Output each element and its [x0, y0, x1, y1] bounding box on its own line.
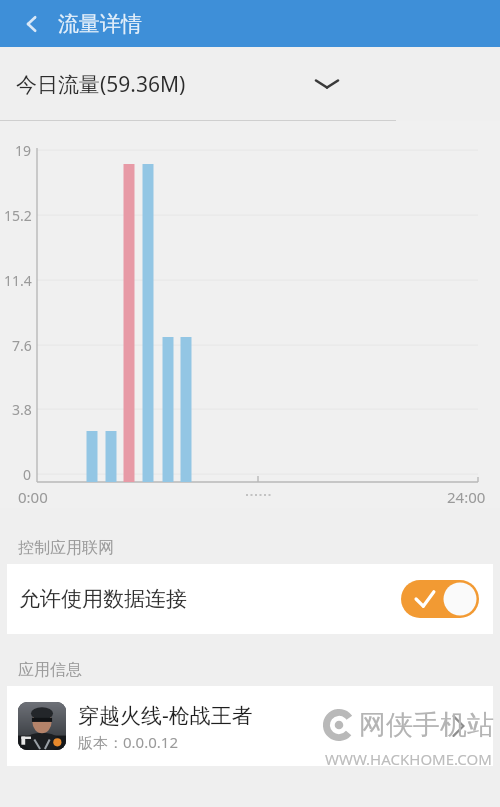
staticText: 19 [15, 141, 32, 160]
staticText: 应用信息 [18, 660, 82, 680]
staticText: 7.6 [12, 336, 32, 355]
staticText: 0:00 [18, 487, 48, 507]
button[interactable]: 今日流量(59.36M) [0, 47, 500, 121]
staticText: 15.2 [4, 206, 32, 225]
staticText: WWW.HACKHOME.COM [325, 749, 492, 769]
button[interactable]: Back [12, 4, 52, 44]
button[interactable]: Allow mobile data toggle [401, 580, 479, 618]
other: Expand [312, 74, 342, 94]
staticText: 3.8 [12, 400, 32, 419]
staticText: 0 [23, 465, 32, 484]
staticText: 网侠手机站 [359, 708, 494, 742]
staticText: 允许使用数据连接 [19, 586, 187, 612]
staticText: 流量详情 [58, 11, 142, 37]
staticText: 穿越火线-枪战王者 [78, 701, 253, 730]
staticText: 24:00 [447, 487, 486, 507]
other: Open app details [449, 713, 467, 739]
staticText: 控制应用联网 [18, 538, 114, 558]
staticText: 今日流量(59.36M) [16, 70, 186, 99]
staticText: 版本：0.0.0.12 [78, 732, 178, 752]
button[interactable]: 穿越火线-枪战王者 [7, 686, 493, 766]
button[interactable]: 允许使用数据连接 [7, 564, 493, 634]
staticText: 11.4 [4, 271, 32, 290]
